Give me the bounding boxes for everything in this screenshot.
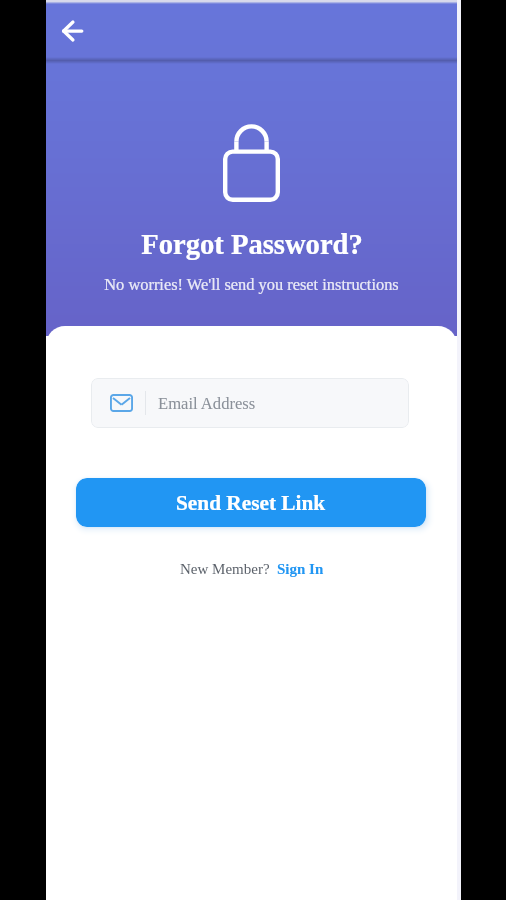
button[interactable]: Email Address xyxy=(91,378,409,428)
staticText: Email Address xyxy=(158,394,256,412)
staticText: No worries! We'll send you reset instruc… xyxy=(104,275,399,293)
button[interactable]: Back xyxy=(50,7,98,55)
staticText: Sign In xyxy=(277,561,324,578)
staticText: Send Reset Link xyxy=(176,491,326,515)
staticText: Forgot Password? xyxy=(141,229,363,261)
button[interactable]: Sign In xyxy=(277,561,324,578)
staticText: New Member? xyxy=(180,561,270,578)
button[interactable]: Send Reset Link xyxy=(76,478,426,527)
